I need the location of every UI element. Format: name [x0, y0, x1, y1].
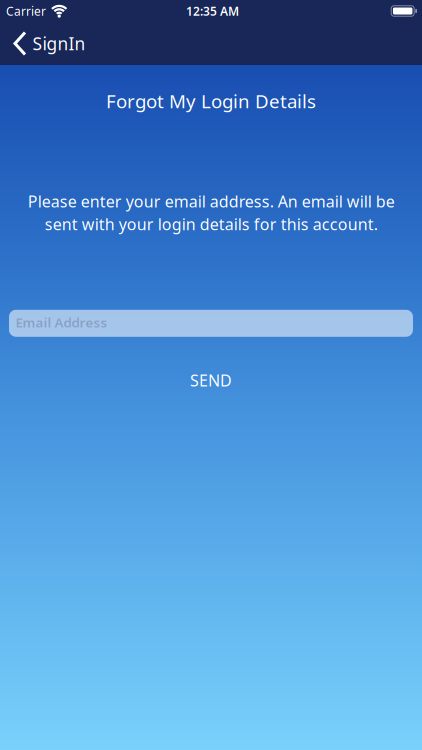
- staticText: 12:35 AM: [186, 3, 239, 19]
- button[interactable]: SEND: [178, 364, 244, 397]
- staticText: Carrier: [6, 3, 46, 19]
- staticText: SEND: [190, 370, 232, 391]
- staticText: Email Address: [15, 313, 107, 331]
- staticText: SignIn: [32, 32, 85, 55]
- button[interactable]: Email Address: [9, 310, 413, 337]
- staticText: Forgot My Login Details: [106, 88, 316, 113]
- button[interactable]: Back: [0, 32, 93, 55]
- staticText: Please enter your email address. An emai…: [27, 191, 394, 235]
